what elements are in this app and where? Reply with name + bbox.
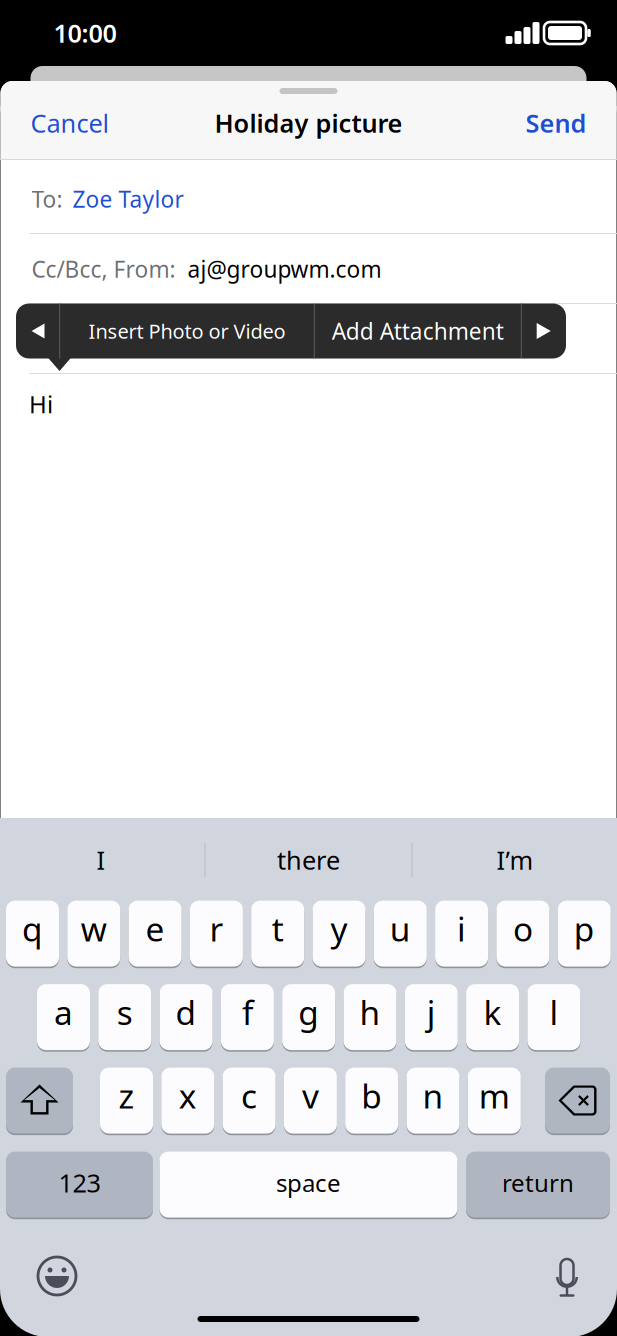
button[interactable]: g [282, 982, 335, 1052]
staticText: z [118, 1073, 134, 1118]
staticText: b [361, 1073, 382, 1118]
staticText: c [241, 1073, 257, 1118]
button[interactable]: s [98, 982, 151, 1052]
button[interactable]: r [190, 899, 243, 968]
staticText: i [457, 906, 466, 951]
button[interactable]: Send [514, 97, 598, 149]
button[interactable]: p [558, 899, 611, 968]
button[interactable]: Insert Photo or Video [60, 303, 314, 358]
staticText: t [272, 906, 284, 951]
staticText: w [81, 906, 107, 951]
staticText: Zoe Taylor [72, 184, 183, 214]
button[interactable]: j [405, 982, 458, 1052]
staticText: k [484, 990, 502, 1034]
button[interactable]: u [374, 899, 427, 968]
button[interactable]: y [312, 899, 365, 968]
staticText: Hi [29, 388, 53, 420]
staticText: Add Attachment [332, 316, 504, 346]
staticText: return [502, 1167, 574, 1199]
staticText: there [277, 843, 340, 877]
button[interactable]: z [100, 1066, 153, 1135]
button[interactable]: w [67, 899, 120, 968]
staticText: 10:00 [53, 16, 116, 50]
button[interactable]: Previous [16, 303, 60, 358]
button[interactable]: a [37, 982, 90, 1052]
button[interactable]: o [496, 899, 549, 968]
button[interactable]: return [466, 1150, 610, 1219]
button[interactable]: Cc/Bcc, From: [31, 235, 616, 303]
staticText: h [359, 990, 380, 1034]
staticText: x [179, 1073, 197, 1118]
button[interactable]: To: [31, 165, 616, 233]
button[interactable]: t [251, 899, 304, 968]
staticText: Cancel [30, 106, 109, 140]
staticText: Insert Photo or Video [88, 318, 285, 344]
button[interactable]: n [406, 1066, 459, 1135]
button[interactable]: Dictate [539, 1255, 595, 1311]
button[interactable]: l [527, 982, 580, 1052]
staticText: s [117, 990, 133, 1034]
staticText: g [298, 990, 319, 1034]
staticText: a [54, 990, 73, 1034]
staticText: q [22, 906, 43, 951]
button[interactable]: Add Attachment [314, 303, 521, 358]
button[interactable]: 123 [6, 1150, 153, 1219]
button[interactable]: Next [521, 303, 566, 358]
button[interactable]: c [223, 1066, 276, 1135]
button[interactable]: I’m [415, 829, 615, 891]
staticText: l [549, 990, 558, 1034]
staticText: o [513, 906, 533, 951]
staticText: 123 [58, 1166, 100, 1199]
button[interactable]: k [466, 982, 519, 1052]
button[interactable]: e [129, 899, 182, 968]
staticText: u [390, 906, 411, 951]
staticText: e [146, 906, 165, 951]
button[interactable]: b [345, 1066, 398, 1135]
button[interactable]: Shift [6, 1066, 73, 1135]
button[interactable]: h [343, 982, 396, 1052]
button[interactable]: q [6, 899, 59, 968]
staticText: d [176, 990, 197, 1034]
button[interactable]: there [208, 829, 408, 891]
staticText: To: [31, 184, 62, 214]
staticText: m [479, 1073, 510, 1118]
staticText: n [422, 1073, 443, 1118]
button[interactable]: m [468, 1066, 521, 1135]
staticText: I [96, 843, 105, 877]
button[interactable]: d [160, 982, 213, 1052]
button[interactable]: Delete [545, 1066, 610, 1135]
staticText: aj@groupwm.com [187, 254, 381, 284]
staticText: Holiday picture [214, 106, 402, 140]
button[interactable]: v [284, 1066, 337, 1135]
staticText: I’m [496, 843, 533, 877]
button[interactable]: x [161, 1066, 214, 1135]
button[interactable]: I [1, 829, 201, 891]
staticText: r [209, 906, 223, 951]
button[interactable]: i [435, 899, 488, 968]
staticText: v [302, 1073, 319, 1118]
staticText: Cc/Bcc, From: [31, 254, 175, 284]
staticText: j [427, 990, 436, 1034]
staticText: space [276, 1167, 341, 1199]
staticText: y [330, 906, 347, 951]
staticText: f [242, 990, 253, 1034]
button[interactable]: f [221, 982, 274, 1052]
staticText: Send [525, 106, 586, 140]
button[interactable]: Emoji keyboard [29, 1248, 85, 1304]
staticText: p [574, 906, 595, 951]
button[interactable]: Cancel [20, 97, 120, 149]
button[interactable]: space [159, 1150, 457, 1219]
